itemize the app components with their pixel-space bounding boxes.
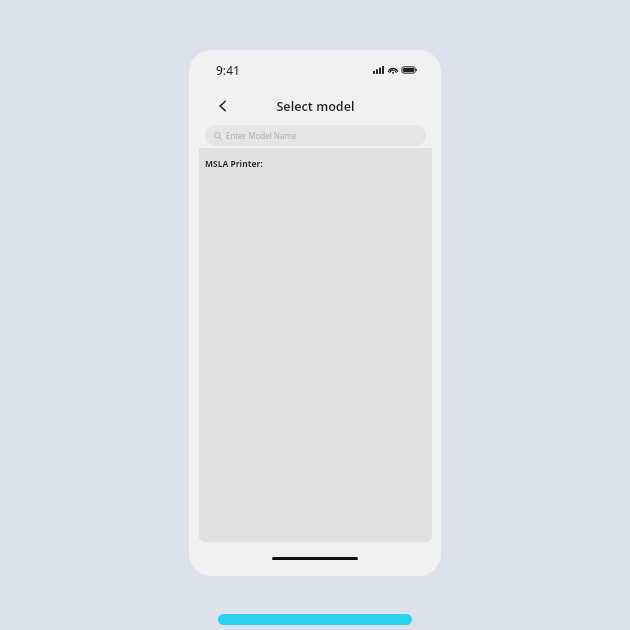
staticText: MSLA Printer: [205,158,263,170]
button[interactable]: Back [211,94,235,118]
staticText: Select model [276,98,355,115]
button[interactable]: Enter Model Name [205,125,426,146]
button[interactable]: Continue [218,614,412,625]
staticText: Enter Model Name [226,130,297,141]
staticText: 9:41 [216,62,240,78]
